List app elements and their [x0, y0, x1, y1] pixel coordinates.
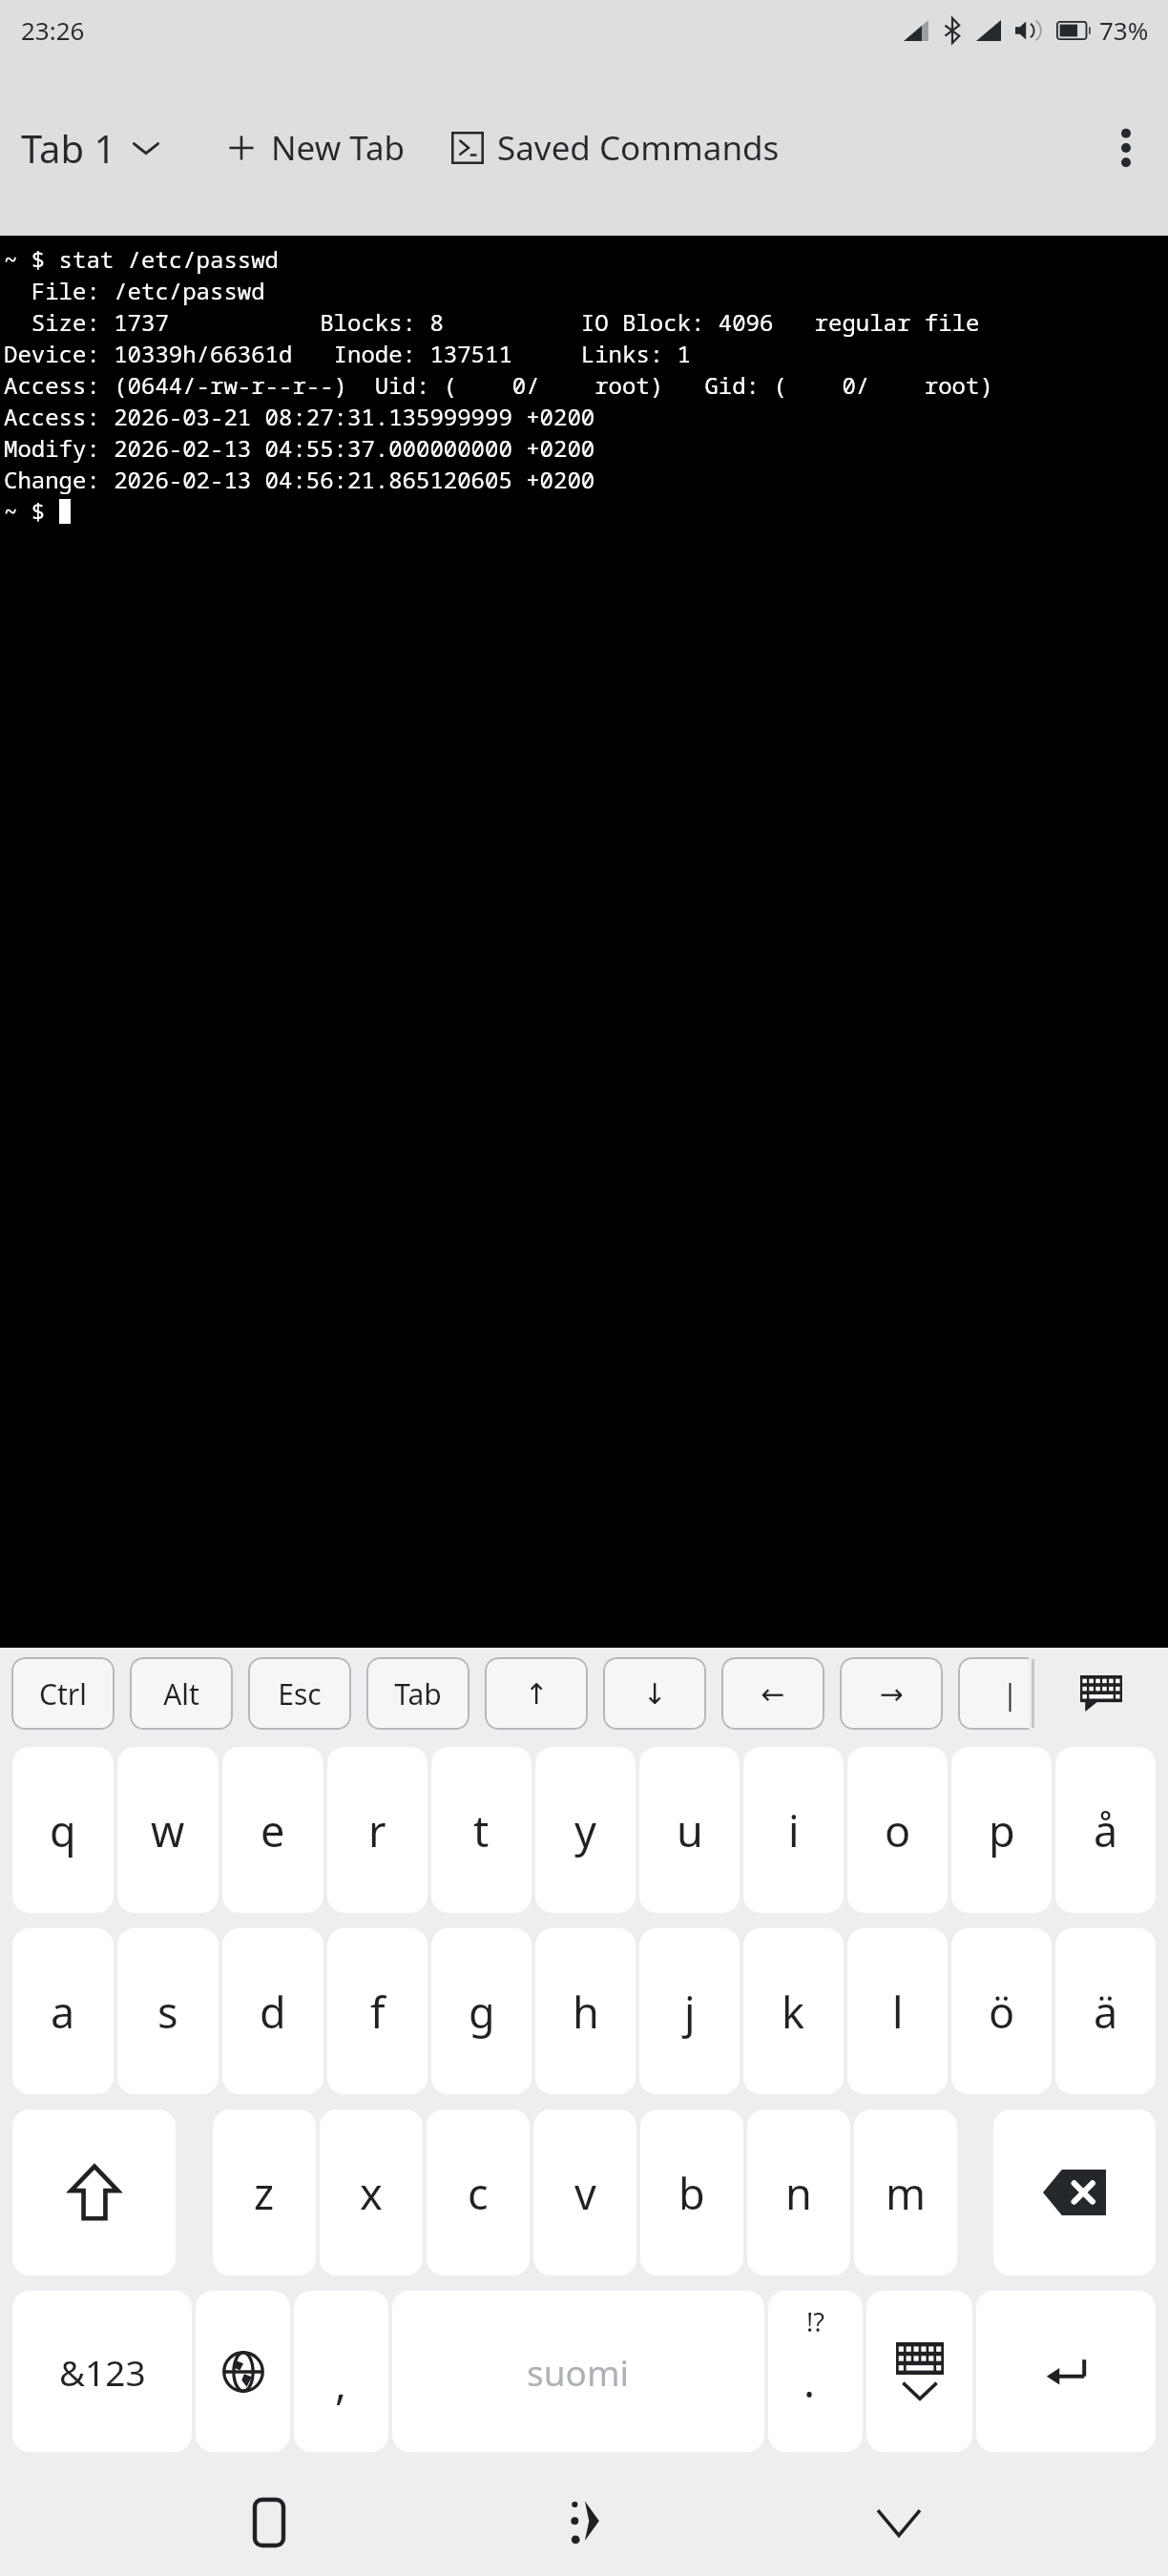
- button[interactable]: z: [213, 2109, 316, 2275]
- staticText: |: [1002, 1674, 1018, 1714]
- staticText: å: [1094, 1801, 1118, 1859]
- button[interactable]: j: [639, 1928, 740, 2094]
- button[interactable]: &123: [12, 2291, 192, 2452]
- staticText: y: [574, 1801, 596, 1859]
- staticText: j: [684, 1983, 696, 2041]
- button[interactable]: f: [327, 1928, 428, 2094]
- staticText: ä: [1094, 1983, 1118, 2041]
- staticText: ~ $: [4, 495, 59, 527]
- button[interactable]: x: [320, 2109, 423, 2275]
- button[interactable]: d: [222, 1928, 323, 2094]
- button[interactable]: ↑: [485, 1657, 588, 1730]
- button[interactable]: Alt: [130, 1657, 233, 1730]
- staticText: New Tab: [271, 125, 406, 171]
- button[interactable]: v: [533, 2109, 636, 2275]
- staticText: w: [151, 1801, 185, 1859]
- button[interactable]: Hide keyboard: [866, 2291, 972, 2452]
- button[interactable]: m: [854, 2109, 957, 2275]
- button[interactable]: o: [847, 1747, 948, 1913]
- button[interactable]: Change language: [196, 2291, 290, 2452]
- staticText: Access: 2026-03-21 08:27:31.135999999 +0…: [4, 401, 595, 432]
- staticText: ↓: [642, 1677, 667, 1711]
- button[interactable]: y: [535, 1747, 636, 1913]
- button[interactable]: a: [12, 1928, 114, 2094]
- staticText: q: [50, 1801, 76, 1859]
- button[interactable]: ↓: [603, 1657, 706, 1730]
- staticText: m: [886, 2164, 927, 2222]
- button[interactable]: Esc: [248, 1657, 351, 1730]
- staticText: u: [677, 1801, 703, 1859]
- staticText: .: [803, 2352, 816, 2410]
- button[interactable]: t: [431, 1747, 532, 1913]
- button[interactable]: u: [639, 1747, 740, 1913]
- staticText: &123: [59, 2348, 146, 2396]
- staticText: l: [892, 1983, 904, 2041]
- staticText: r: [368, 1801, 386, 1859]
- staticText: f: [370, 1983, 386, 2041]
- staticText: !?: [806, 2304, 824, 2339]
- button[interactable]: i: [743, 1747, 844, 1913]
- staticText: a: [51, 1983, 75, 2041]
- staticText: Ctrl: [39, 1674, 87, 1714]
- staticText: suomi: [527, 2348, 630, 2396]
- button[interactable]: w: [117, 1747, 219, 1913]
- staticText: t: [473, 1801, 490, 1859]
- staticText: p: [989, 1801, 1015, 1859]
- button[interactable]: ←: [721, 1657, 824, 1730]
- button[interactable]: Saved Commands: [442, 115, 789, 180]
- button[interactable]: b: [640, 2109, 743, 2275]
- button[interactable]: å: [1055, 1747, 1156, 1913]
- staticText: h: [573, 1983, 599, 2041]
- staticText: ö: [989, 1983, 1015, 2041]
- button[interactable]: h: [535, 1928, 636, 2094]
- staticText: ,: [335, 2354, 347, 2412]
- staticText: k: [782, 1983, 805, 2041]
- button[interactable]: Tab: [366, 1657, 469, 1730]
- button[interactable]: Show keyboard: [1061, 1653, 1141, 1734]
- button[interactable]: Shift: [12, 2109, 176, 2275]
- button[interactable]: p: [951, 1747, 1052, 1913]
- button[interactable]: suomi: [392, 2291, 764, 2452]
- staticText: Tab: [394, 1674, 442, 1714]
- button[interactable]: ö: [951, 1928, 1052, 2094]
- staticText: Size: 1737 Blocks: 8 IO Block: 4096 regu…: [4, 306, 980, 338]
- staticText: →: [879, 1677, 904, 1711]
- staticText: File: /etc/passwd: [4, 275, 265, 306]
- button[interactable]: e: [222, 1747, 323, 1913]
- staticText: Modify: 2026-02-13 04:55:37.000000000 +0…: [4, 432, 595, 464]
- staticText: x: [360, 2164, 383, 2222]
- staticText: Alt: [163, 1674, 199, 1714]
- button[interactable]: k: [743, 1928, 844, 2094]
- staticText: c: [468, 2164, 489, 2222]
- button[interactable]: Backspace: [993, 2109, 1156, 2275]
- button[interactable]: Period: [768, 2291, 863, 2452]
- button[interactable]: s: [117, 1928, 219, 2094]
- staticText: v: [574, 2164, 596, 2222]
- button[interactable]: l: [847, 1928, 948, 2094]
- button[interactable]: Back: [853, 2477, 945, 2568]
- button[interactable]: |: [958, 1657, 1061, 1730]
- button[interactable]: c: [427, 2109, 530, 2275]
- button[interactable]: Recent apps: [223, 2477, 315, 2568]
- button[interactable]: More options: [1092, 114, 1160, 182]
- button[interactable]: Ctrl: [11, 1657, 115, 1730]
- staticText: Access: (0644/-rw-r--r--) Uid: ( 0/ root…: [4, 369, 993, 401]
- button[interactable]: Comma: [294, 2291, 388, 2452]
- button[interactable]: Enter: [976, 2291, 1156, 2452]
- staticText: ~ $ stat /etc/passwd: [4, 243, 279, 275]
- button[interactable]: r: [327, 1747, 428, 1913]
- button[interactable]: ä: [1055, 1928, 1156, 2094]
- button[interactable]: New Tab: [216, 115, 415, 180]
- staticText: ↑: [524, 1677, 549, 1711]
- staticText: s: [157, 1983, 178, 2041]
- button[interactable]: Home: [538, 2477, 630, 2568]
- staticText: d: [260, 1983, 286, 2041]
- button[interactable]: →: [840, 1657, 943, 1730]
- staticText: Tab 1: [21, 122, 116, 174]
- button[interactable]: g: [431, 1928, 532, 2094]
- button[interactable]: q: [12, 1747, 114, 1913]
- staticText: b: [678, 2164, 705, 2222]
- button[interactable]: Tab 1: [8, 113, 174, 183]
- button[interactable]: n: [747, 2109, 850, 2275]
- staticText: 23:26: [21, 13, 85, 47]
